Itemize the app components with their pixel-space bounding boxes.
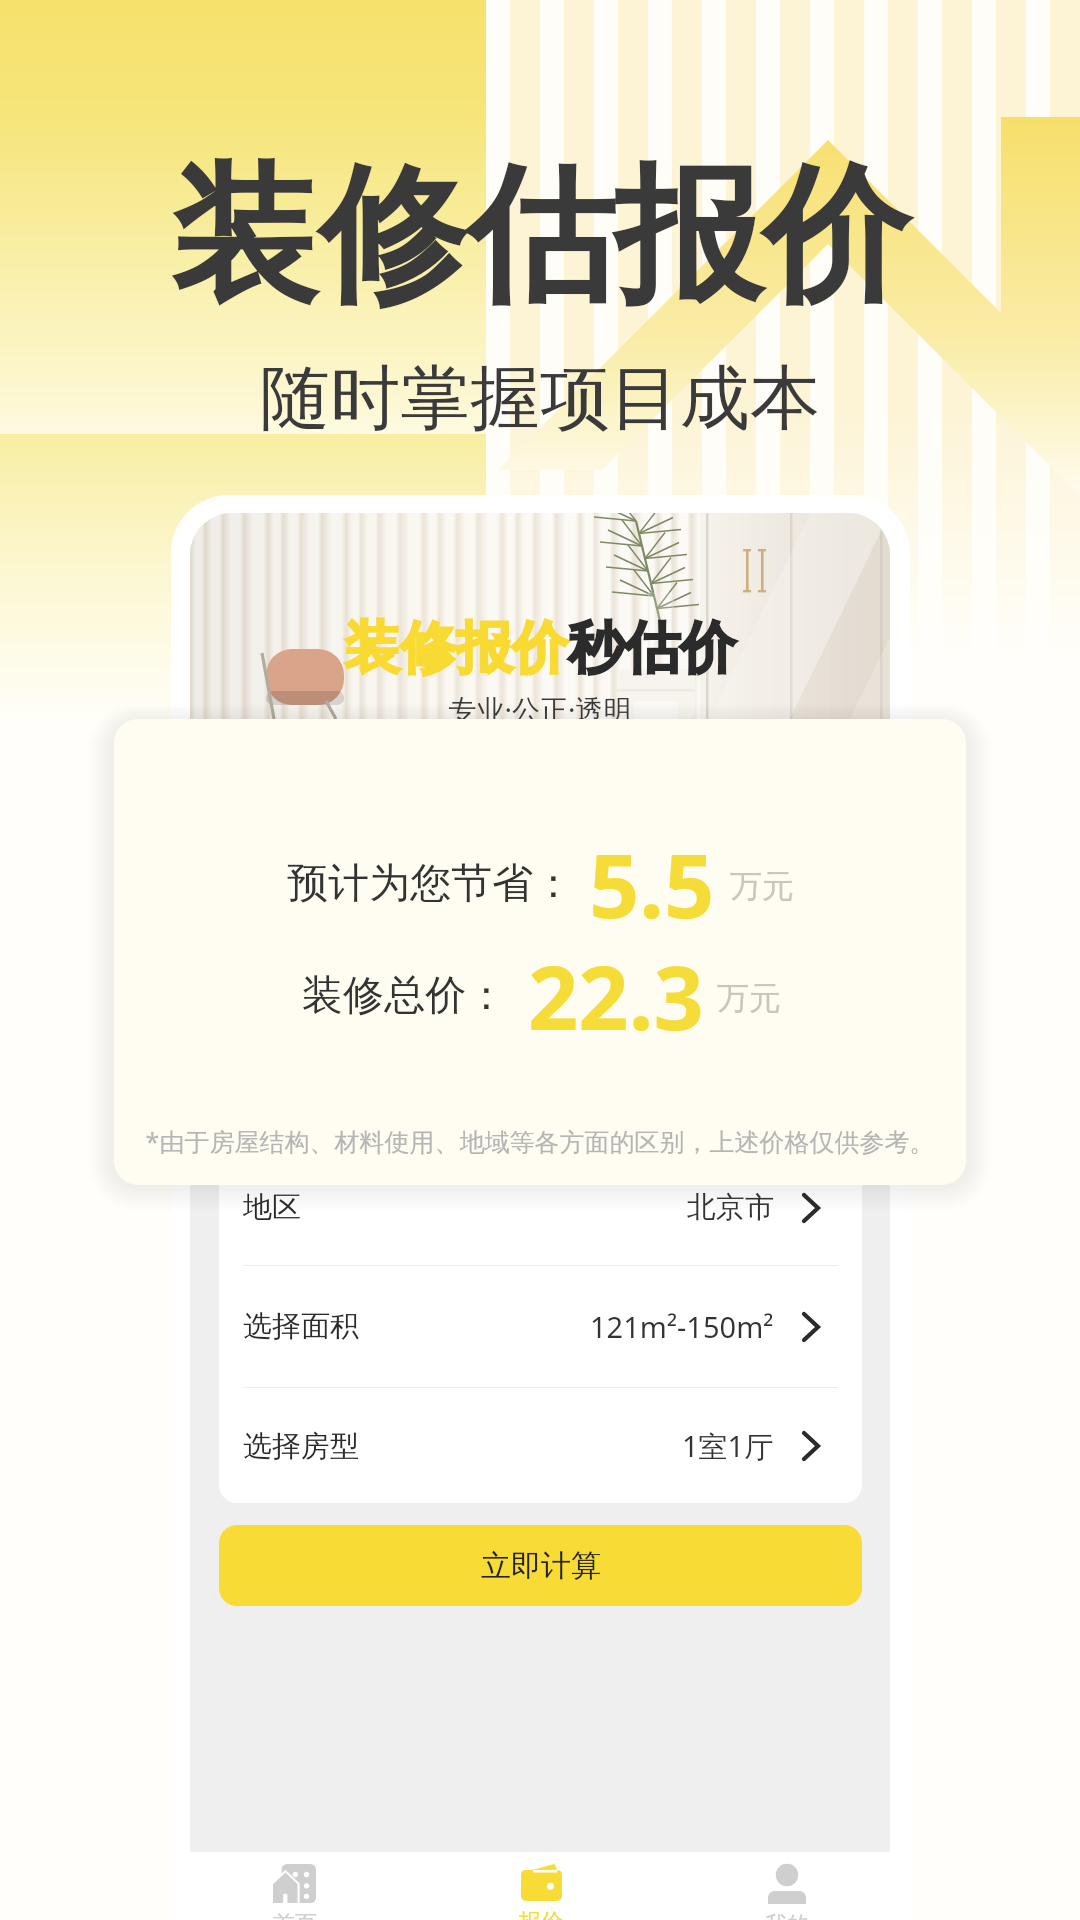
staticText: 装修报价 <box>344 613 568 684</box>
staticText: 北京市 <box>687 1189 774 1226</box>
staticText: 预计为您节省： <box>287 858 574 910</box>
staticText: 秒估价 <box>568 613 736 684</box>
staticText: 随时掌握项目成本 <box>0 355 1080 443</box>
staticText: 立即计算 <box>481 1547 601 1585</box>
staticText: 121m²-150m² <box>590 1307 774 1346</box>
staticText: 首页 <box>273 1910 317 1920</box>
staticText: 装修总价： <box>302 970 507 1022</box>
other: 首页 <box>273 1864 316 1903</box>
staticText: 地区 <box>243 1189 301 1226</box>
staticText: 万元 <box>730 866 794 906</box>
button[interactable]: 选择面积 <box>219 1266 862 1387</box>
staticText: 装修估报价 <box>0 143 1080 329</box>
staticText: 万元 <box>717 978 781 1018</box>
button[interactable]: 报价 <box>418 1852 664 1920</box>
button[interactable]: 立即计算 <box>219 1525 862 1606</box>
button[interactable]: 选择房型 <box>219 1387 862 1503</box>
staticText: 选择房型 <box>243 1428 359 1465</box>
button[interactable]: 地区 <box>219 1187 862 1266</box>
staticText: 报价 <box>519 1908 563 1920</box>
staticText: 1室1厅 <box>682 1426 774 1466</box>
other: 我的 <box>768 1864 806 1904</box>
other: 报价 <box>521 1864 562 1901</box>
staticText: 专业·公正·透明 <box>190 690 890 728</box>
staticText: 选择面积 <box>243 1308 359 1345</box>
button[interactable]: 首页 <box>171 1852 418 1920</box>
button[interactable]: 我的 <box>664 1852 910 1920</box>
staticText: 我的 <box>765 1911 809 1920</box>
staticText: 22.3 <box>528 936 704 1056</box>
staticText: *由于房屋结构、材料使用、地域等各方面的区别，上述价格仅供参考。 <box>114 1124 966 1158</box>
staticText: 5.5 <box>589 824 715 944</box>
